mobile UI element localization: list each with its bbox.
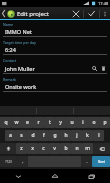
staticText: 6:24 <box>5 46 107 53</box>
button[interactable]: v <box>49 143 60 154</box>
button[interactable]: w <box>11 117 22 128</box>
button[interactable]: h <box>60 130 71 141</box>
staticText: s <box>20 132 23 139</box>
staticText: u <box>70 119 74 126</box>
staticText: ?123 <box>5 160 12 164</box>
staticText: w <box>14 119 19 126</box>
button[interactable]: , <box>17 156 28 167</box>
staticText: IMMO Net <box>5 28 107 35</box>
staticText: John Muller <box>5 65 90 72</box>
button[interactable]: b <box>60 143 71 154</box>
staticText: t <box>49 119 51 126</box>
button[interactable]: Back <box>0 169 36 183</box>
button[interactable]: p <box>99 117 110 128</box>
button[interactable]: Edit project <box>0 7 68 20</box>
staticText: q <box>4 119 8 126</box>
button[interactable]: Recent apps <box>73 169 110 183</box>
button[interactable]: Done <box>84 7 99 20</box>
button[interactable]: y <box>55 117 66 128</box>
button[interactable]: Contact <box>0 58 110 74</box>
button[interactable]: i <box>77 117 88 128</box>
staticText: . <box>86 158 88 165</box>
staticText: x <box>31 145 34 152</box>
button[interactable]: Backspace <box>93 143 110 154</box>
button[interactable]: o <box>88 117 99 128</box>
button[interactable]: . <box>81 156 92 167</box>
button[interactable]: Name <box>0 22 110 37</box>
staticText: o <box>92 119 96 126</box>
staticText: h <box>64 132 68 139</box>
button[interactable]: g <box>49 130 60 141</box>
button[interactable]: a <box>5 130 16 141</box>
staticText: f <box>43 132 45 139</box>
button[interactable]: j <box>71 130 82 141</box>
button[interactable]: d <box>27 130 38 141</box>
staticText: d <box>31 132 35 139</box>
staticText: m <box>85 145 90 152</box>
staticText: Target time per day <box>3 40 36 45</box>
button[interactable]: k <box>82 130 93 141</box>
button[interactable]: More options <box>100 7 110 20</box>
staticText: j <box>76 132 78 139</box>
button[interactable]: Target time per day <box>0 40 110 55</box>
staticText: y <box>59 119 62 126</box>
staticText: Contact <box>3 58 17 63</box>
staticText: r <box>37 119 40 126</box>
button[interactable]: s <box>16 130 27 141</box>
staticText: g <box>53 132 57 139</box>
button[interactable]: ?123 <box>0 156 17 167</box>
staticText: Edit project <box>17 10 49 18</box>
staticText: Remark <box>3 77 17 82</box>
staticText: z <box>20 145 23 152</box>
button[interactable]: u <box>66 117 77 128</box>
staticText: b <box>64 145 68 152</box>
button[interactable]: z <box>16 143 27 154</box>
button[interactable]: Next <box>92 156 110 167</box>
staticText: Onsite work <box>5 83 107 90</box>
staticText: v <box>53 145 56 152</box>
button[interactable]: Search contact <box>90 64 98 72</box>
button[interactable]: Shift <box>0 143 16 154</box>
staticText: i <box>82 119 84 126</box>
staticText: n <box>75 145 79 152</box>
button[interactable]: Cancel <box>68 7 83 20</box>
button[interactable]: e <box>22 117 33 128</box>
staticText: , <box>22 158 24 165</box>
staticText: a <box>9 132 12 139</box>
staticText: l <box>98 132 100 139</box>
button[interactable]: n <box>71 143 82 154</box>
staticText: k <box>86 132 89 139</box>
staticText: p <box>103 119 107 126</box>
staticText: Next <box>98 160 105 164</box>
staticText: 17:48 <box>98 1 109 6</box>
staticText: Name <box>3 22 14 27</box>
button[interactable]: x <box>27 143 38 154</box>
button[interactable]: r <box>33 117 44 128</box>
staticText: e <box>26 119 29 126</box>
button[interactable]: f <box>38 130 49 141</box>
button[interactable]: Remark <box>0 77 110 92</box>
button[interactable]: Home <box>36 169 73 183</box>
button[interactable]: t <box>44 117 55 128</box>
button[interactable]: l <box>93 130 104 141</box>
button[interactable]: q <box>0 117 11 128</box>
staticText: c <box>42 145 45 152</box>
button[interactable]: Delete contact <box>99 64 107 72</box>
button[interactable]: m <box>82 143 93 154</box>
button[interactable]: c <box>38 143 49 154</box>
